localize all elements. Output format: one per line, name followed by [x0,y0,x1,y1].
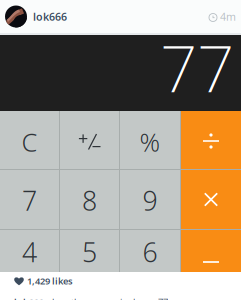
button[interactable]: 5 [60,230,119,272]
button[interactable]: Divide [181,111,241,169]
button[interactable]: % [120,111,180,169]
button[interactable]: Subtract [181,230,241,272]
button[interactable]: 9 [120,170,180,229]
staticText: when the answer is always 77 [43,296,168,300]
button[interactable]: C [0,111,59,169]
button[interactable]: 7 [0,170,59,229]
staticText: lok666 [33,9,67,24]
button[interactable]: lok666 [0,296,241,300]
button[interactable]: Plus minus [60,111,119,169]
button[interactable]: 4 [0,230,59,272]
staticText: 77 [160,24,234,110]
staticText: 6 [142,234,157,270]
button[interactable]: 1,429 likes [0,272,241,290]
button[interactable]: 8 [60,170,119,229]
staticText: C [21,125,37,159]
staticText: lok666 [14,296,43,300]
staticText: 4 [22,234,37,270]
button[interactable]: 6 [120,230,180,272]
staticText: 5 [82,234,97,270]
staticText: 1,429 likes [27,275,73,287]
button[interactable]: lok666 profile photo [5,5,27,27]
staticText: 4m [220,9,236,24]
button[interactable]: lok666 [27,9,67,24]
staticText: 7 [22,183,37,218]
staticText: 9 [142,183,157,218]
staticText: % [139,125,160,159]
button[interactable]: Multiply [181,170,241,229]
staticText: 8 [82,183,97,218]
